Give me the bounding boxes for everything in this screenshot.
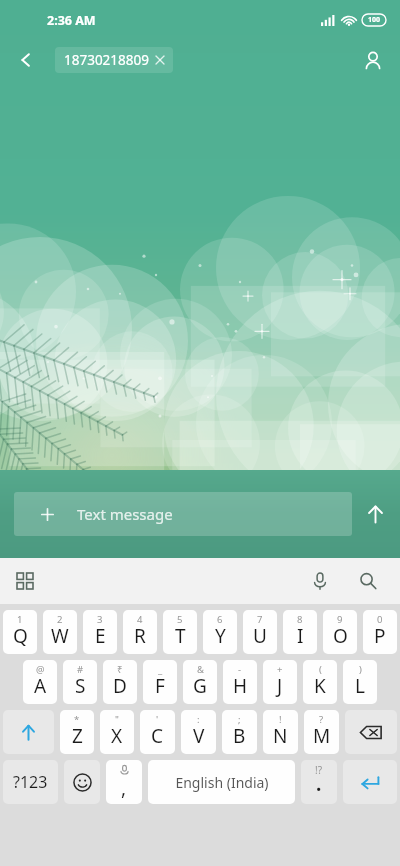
staticText: S	[75, 673, 86, 699]
button[interactable]: !	[263, 710, 298, 754]
staticText: :	[197, 713, 200, 726]
staticText: English (India)	[175, 773, 269, 792]
button[interactable]: Text message	[14, 492, 352, 536]
button[interactable]: Search	[350, 563, 386, 599]
staticText: -	[238, 663, 242, 676]
staticText: E	[95, 623, 106, 649]
staticText: U	[253, 623, 267, 649]
button[interactable]: '	[140, 710, 175, 754]
button[interactable]: 9	[323, 610, 357, 654]
staticText: ₹	[117, 663, 123, 676]
button[interactable]: )	[343, 660, 377, 704]
staticText: H	[233, 673, 248, 699]
staticText: N	[273, 723, 288, 749]
button[interactable]: Emoji	[64, 760, 100, 804]
button[interactable]: 18730218809	[55, 47, 173, 73]
staticText: 3	[97, 613, 103, 626]
staticText: B	[233, 723, 246, 749]
staticText: K	[314, 673, 326, 699]
staticText: 100	[368, 15, 381, 25]
button[interactable]: 1	[3, 610, 37, 654]
button[interactable]: *	[60, 710, 94, 754]
button[interactable]: Back	[8, 42, 44, 78]
staticText: +	[277, 663, 283, 676]
staticText: L	[355, 673, 365, 699]
button[interactable]: &	[183, 660, 217, 704]
button[interactable]: ;	[222, 710, 257, 754]
staticText: '	[156, 713, 159, 726]
staticText: "	[115, 713, 119, 726]
staticText: T	[175, 623, 186, 649]
staticText: ?	[319, 713, 324, 726]
button[interactable]: _	[143, 660, 177, 704]
button[interactable]: -	[223, 660, 257, 704]
button[interactable]: Enter	[343, 760, 397, 804]
staticText: M	[313, 723, 331, 749]
staticText: .	[316, 771, 322, 797]
staticText: 2	[57, 613, 63, 626]
staticText: G	[193, 673, 207, 699]
staticText: O	[333, 623, 348, 649]
button[interactable]: ?	[304, 710, 339, 754]
button[interactable]: 6	[203, 610, 237, 654]
staticText: 0	[377, 613, 383, 626]
button[interactable]: (	[303, 660, 337, 704]
button[interactable]: Send	[352, 491, 398, 537]
button[interactable]: "	[100, 710, 134, 754]
button[interactable]: @	[23, 660, 57, 704]
button[interactable]: !?	[301, 760, 337, 804]
button[interactable]: 2	[43, 610, 77, 654]
staticText: ?123	[13, 771, 48, 793]
staticText: 4	[137, 613, 143, 626]
staticText: )	[359, 663, 362, 676]
staticText: 18730218809	[64, 51, 149, 69]
button[interactable]: Shift	[3, 710, 54, 754]
staticText: 8	[297, 613, 303, 626]
staticText: I	[297, 623, 304, 649]
button[interactable]: 7	[243, 610, 277, 654]
staticText: 5	[177, 613, 183, 626]
button[interactable]: English (India)	[148, 760, 295, 804]
staticText: 9	[337, 613, 343, 626]
staticText: Text message	[77, 504, 173, 524]
staticText: P	[374, 623, 386, 649]
button[interactable]: ,	[106, 760, 142, 804]
staticText: &	[197, 663, 204, 676]
staticText: F	[155, 673, 165, 699]
button[interactable]: 0	[363, 610, 397, 654]
button[interactable]: 3	[83, 610, 117, 654]
staticText: A	[34, 673, 47, 699]
staticText: @	[36, 663, 45, 676]
staticText: V	[193, 723, 205, 749]
staticText: R	[134, 623, 146, 649]
staticText: _	[158, 663, 163, 676]
staticText: ,	[121, 775, 127, 801]
staticText: D	[113, 673, 127, 699]
button[interactable]: ₹	[103, 660, 137, 704]
button[interactable]: Contact details	[354, 42, 392, 80]
staticText: #	[77, 663, 84, 676]
button[interactable]: Keyboard menu	[8, 564, 42, 598]
button[interactable]: 5	[163, 610, 197, 654]
button[interactable]: 4	[123, 610, 157, 654]
staticText: 7	[257, 613, 263, 626]
button[interactable]: 8	[283, 610, 317, 654]
staticText: *	[74, 713, 80, 726]
staticText: C	[151, 723, 164, 749]
staticText: !	[279, 713, 282, 726]
staticText: J	[277, 673, 283, 699]
button[interactable]: #	[63, 660, 97, 704]
button[interactable]: Backspace	[345, 710, 397, 754]
button[interactable]: :	[181, 710, 216, 754]
button[interactable]: ?123	[3, 760, 58, 804]
staticText: W	[51, 623, 69, 649]
staticText: ;	[238, 713, 241, 726]
button[interactable]: Voice input	[302, 563, 338, 599]
staticText: 2:36 AM	[47, 12, 96, 29]
staticText: Q	[13, 623, 28, 649]
staticText: X	[111, 723, 123, 749]
button[interactable]: +	[263, 660, 297, 704]
staticText: Y	[215, 623, 226, 649]
staticText: (	[319, 663, 322, 676]
staticText: 1	[17, 613, 23, 626]
